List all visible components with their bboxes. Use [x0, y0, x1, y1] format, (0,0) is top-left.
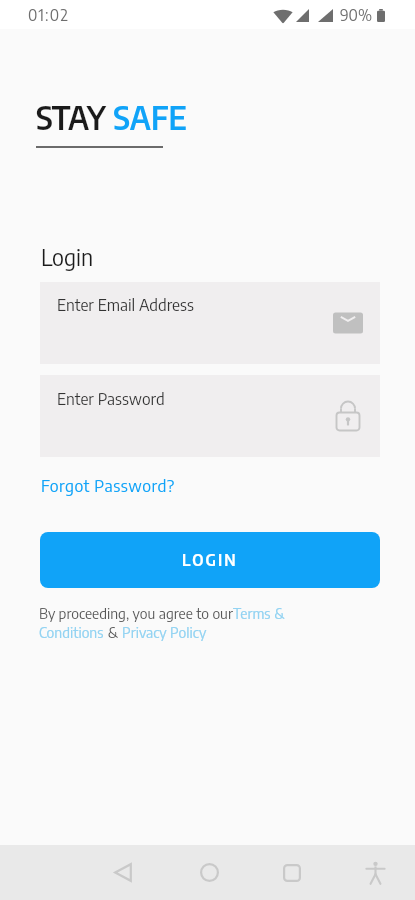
button[interactable]: Forgot Password?	[41, 474, 175, 495]
button[interactable]: Back	[99, 845, 147, 900]
staticText: Enter Password	[57, 388, 165, 409]
button[interactable]: Enter Email Address	[40, 282, 380, 364]
staticText: Login	[41, 242, 94, 271]
button[interactable]: LOGIN	[40, 532, 380, 588]
staticText: 01:02	[28, 5, 70, 25]
button[interactable]: Privacy Policy	[122, 623, 207, 642]
staticText: STAY SAFE	[36, 97, 187, 137]
button[interactable]: Enter Password	[40, 375, 380, 457]
staticText: &	[104, 623, 122, 642]
button[interactable]: Recent apps	[268, 845, 316, 900]
staticText: LOGIN	[182, 550, 238, 570]
staticText: Enter Email Address	[57, 294, 194, 315]
button[interactable]: Home	[185, 845, 233, 900]
staticText: 90%	[340, 5, 373, 25]
staticText: By proceeding, you agree to our	[39, 604, 233, 623]
button[interactable]: Conditions	[39, 623, 104, 642]
button[interactable]: Accessibility	[351, 845, 399, 900]
button[interactable]: Terms &	[233, 604, 285, 623]
staticText: Forgot Password?	[41, 474, 175, 495]
